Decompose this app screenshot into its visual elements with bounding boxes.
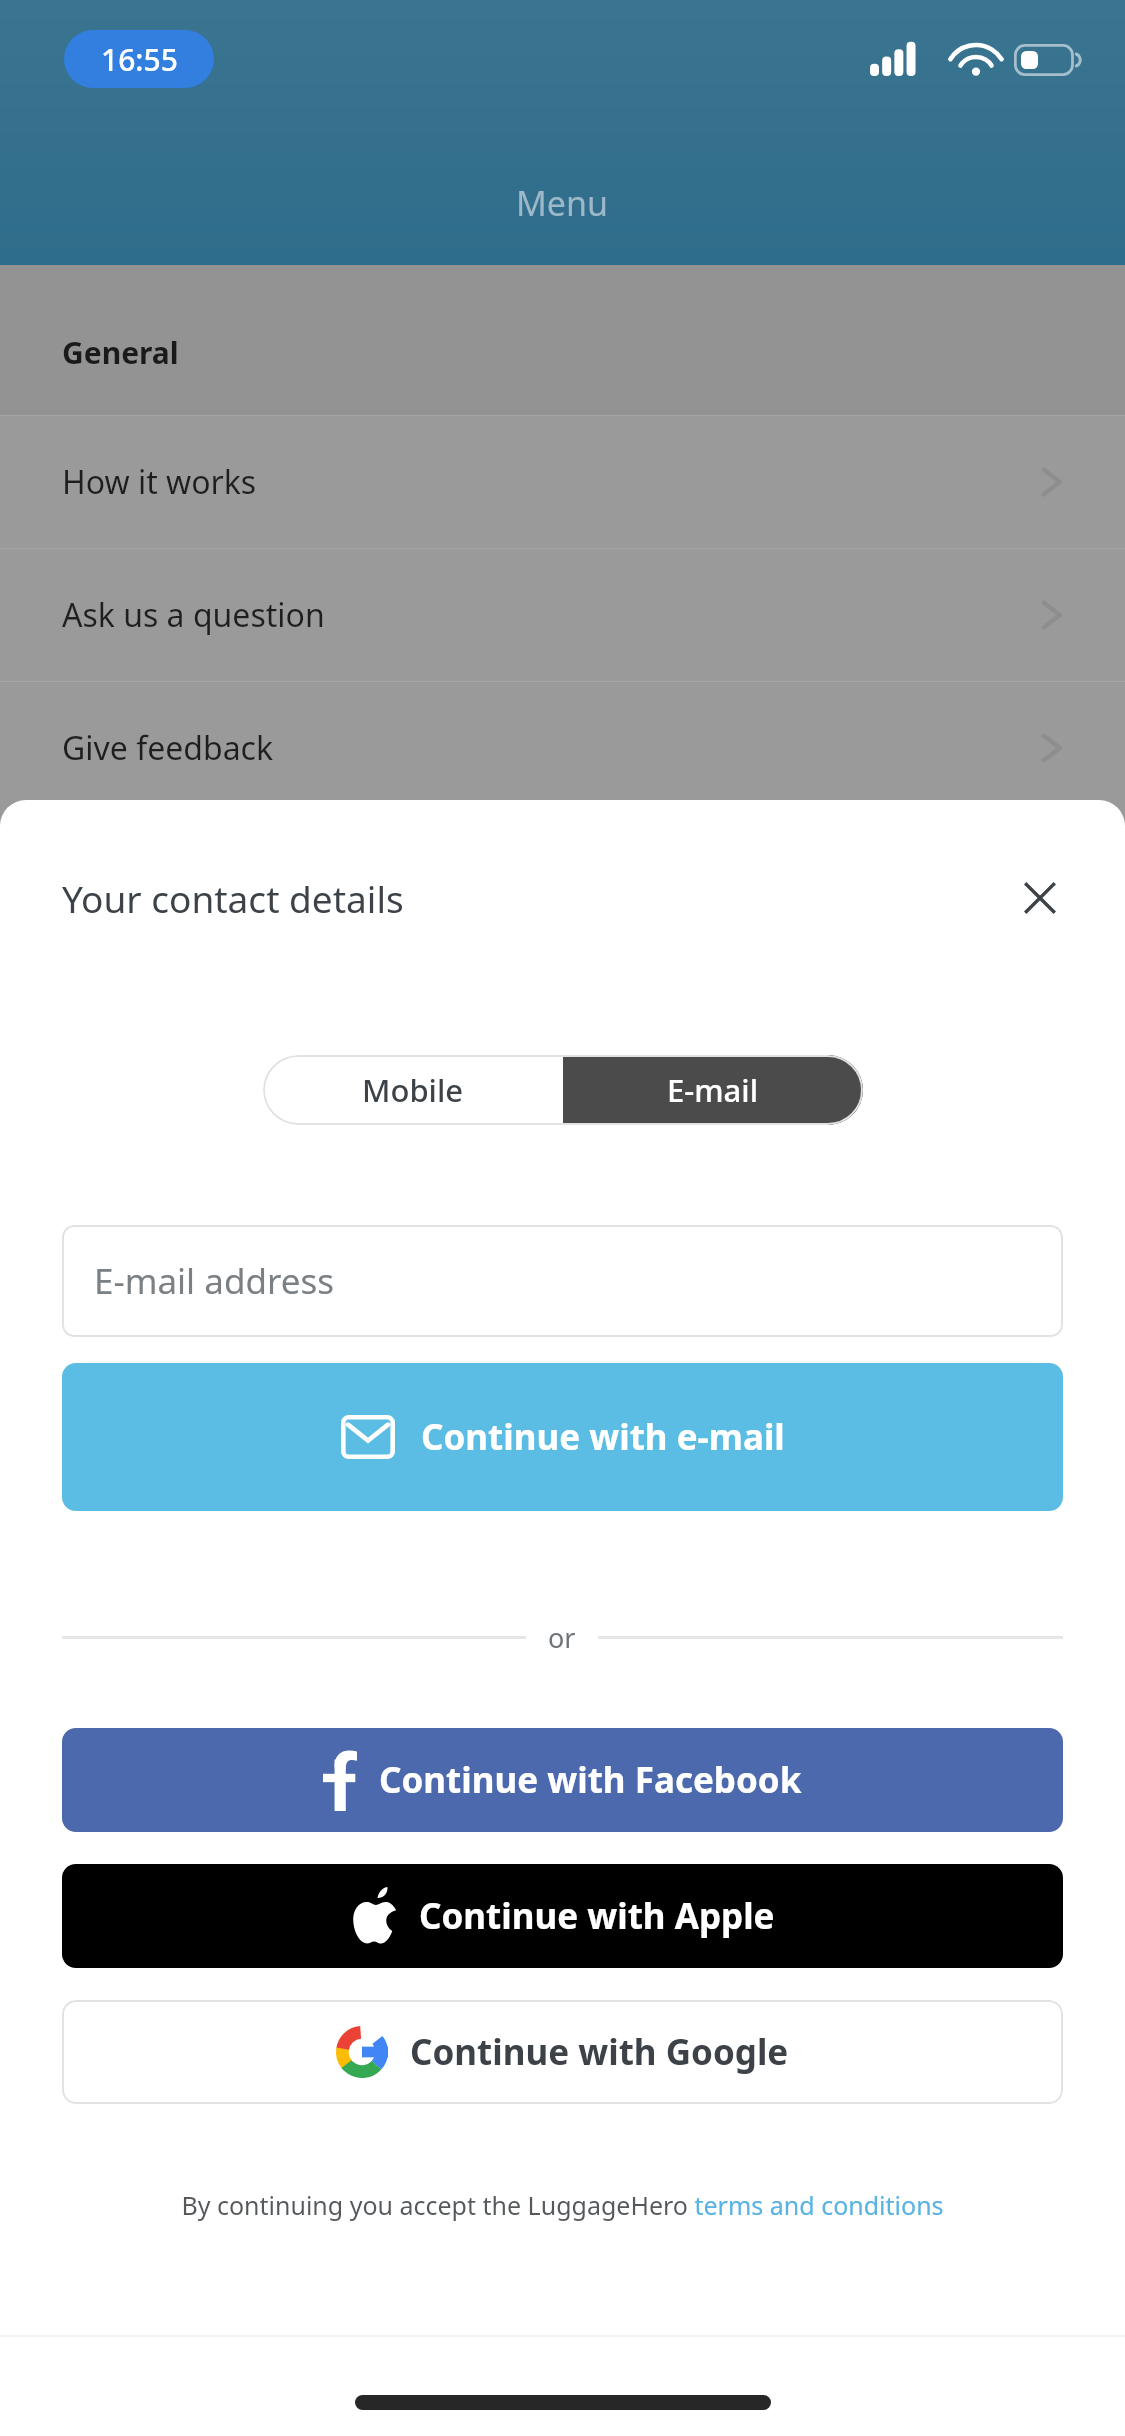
staticText: Menu — [516, 180, 609, 226]
staticText: Continue with Facebook — [379, 1756, 802, 1804]
staticText: or — [548, 1619, 576, 1656]
button[interactable]: By continuing you accept the LuggageHero… — [181, 2188, 944, 2222]
staticText: E-mail address — [94, 1257, 334, 1305]
button[interactable]: Give feedback — [0, 682, 1125, 814]
staticText: Continue with Apple — [419, 1892, 775, 1940]
button[interactable]: Continue with Apple — [62, 1864, 1063, 1968]
staticText: Give feedback — [62, 726, 274, 770]
staticText: E-mail — [667, 1069, 759, 1111]
button[interactable]: Mobile — [263, 1055, 563, 1125]
button[interactable]: E-mail address — [62, 1225, 1063, 1337]
button[interactable]: Continue with Facebook — [62, 1728, 1063, 1832]
button[interactable]: Close — [997, 855, 1083, 941]
staticText: How it works — [62, 460, 257, 504]
staticText: Your contact details — [62, 873, 404, 923]
button[interactable]: Ask us a question — [0, 549, 1125, 681]
button[interactable]: Continue with e-mail — [62, 1363, 1063, 1511]
staticText: General — [62, 332, 179, 373]
staticText: Continue with e-mail — [421, 1413, 785, 1461]
button[interactable]: E-mail — [563, 1055, 863, 1125]
staticText: 16:55 — [101, 39, 178, 80]
button[interactable]: Continue with Google — [62, 2000, 1063, 2104]
button[interactable]: How it works — [0, 416, 1125, 548]
staticText: Mobile — [362, 1069, 464, 1111]
staticText: Ask us a question — [62, 593, 325, 637]
staticText: Continue with Google — [410, 2028, 789, 2076]
